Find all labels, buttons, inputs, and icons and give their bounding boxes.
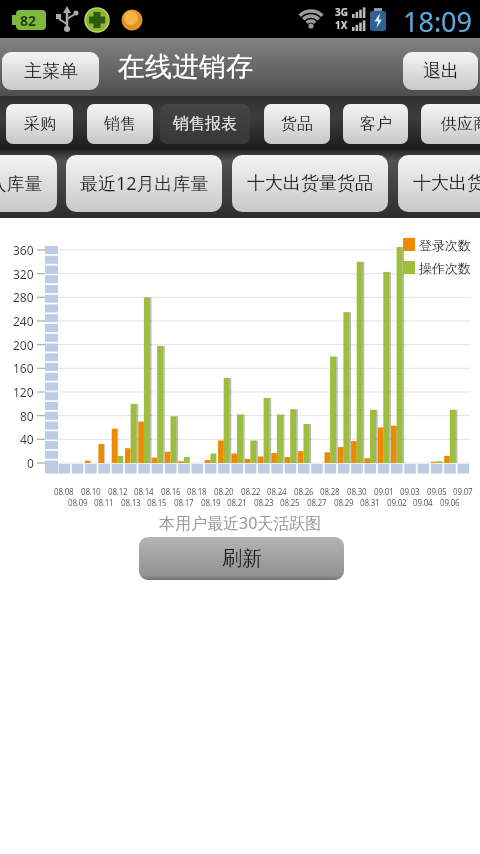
button[interactable]: 采购 (6, 104, 73, 144)
button[interactable]: 十大出货量货品 (232, 155, 388, 212)
button[interactable]: 销售 (87, 104, 153, 144)
staticText: 货品 (281, 114, 313, 134)
button[interactable]: 主菜单 (2, 52, 99, 90)
staticText: 18:09 (403, 3, 473, 40)
staticText: 08.17 (174, 497, 194, 508)
staticText: 08.08 (54, 486, 74, 497)
staticText: 08.21 (227, 497, 247, 508)
staticText: 客户 (360, 114, 392, 134)
staticText: 十大出货量客户 (413, 172, 480, 195)
staticText: 1X (335, 18, 348, 32)
staticText: 09.07 (453, 486, 473, 497)
button[interactable]: 最近12月出库量 (66, 155, 222, 212)
staticText: 09.03 (400, 486, 420, 497)
staticText: 08.28 (320, 486, 340, 497)
staticText: 09.04 (413, 497, 433, 508)
staticText: 08.09 (68, 497, 88, 508)
staticText: 08.29 (334, 497, 354, 508)
staticText: 08.20 (214, 486, 234, 497)
staticText: 3G (335, 5, 348, 19)
staticText: 十大出货量货品 (247, 172, 373, 195)
staticText: 刷新 (222, 546, 262, 571)
staticText: 本用户最近30天活跃图 (159, 512, 322, 534)
button[interactable]: 货品 (264, 104, 330, 144)
staticText: 280 (13, 289, 34, 305)
staticText: 09.02 (387, 497, 407, 508)
button[interactable]: 供应商 (421, 104, 480, 144)
staticText: 08.10 (81, 486, 101, 497)
staticText: 操作次数 (419, 260, 471, 276)
staticText: 主菜单 (24, 60, 78, 83)
staticText: 08.25 (280, 497, 300, 508)
button[interactable]: 客户 (343, 104, 408, 144)
staticText: 08.13 (121, 497, 141, 508)
staticText: 360 (13, 242, 34, 258)
staticText: 09.06 (440, 497, 460, 508)
staticText: 08.24 (267, 486, 287, 497)
staticText: 08.27 (307, 497, 327, 508)
staticText: 08.31 (360, 497, 380, 508)
staticText: 08.15 (147, 497, 167, 508)
staticText: 08.14 (134, 486, 154, 497)
button[interactable]: 最近12月入库量 (0, 155, 57, 212)
staticText: 08.11 (94, 497, 114, 508)
staticText: 120 (13, 384, 34, 400)
staticText: 40 (20, 431, 34, 447)
staticText: 08.30 (347, 486, 367, 497)
staticText: 销售报表 (173, 114, 237, 134)
staticText: 80 (20, 408, 34, 424)
staticText: 0 (27, 455, 34, 471)
staticText: 09.05 (427, 486, 447, 497)
staticText: 登录次数 (419, 237, 471, 253)
staticText: 08.16 (161, 486, 181, 497)
staticText: 退出 (423, 60, 459, 83)
staticText: 82 (20, 11, 37, 30)
button[interactable]: 十大出货量客户 (398, 155, 480, 212)
button[interactable]: 退出 (403, 52, 478, 90)
staticText: 供应商 (441, 114, 480, 134)
staticText: 08.23 (254, 497, 274, 508)
staticText: 08.12 (108, 486, 128, 497)
button[interactable]: 销售报表 (160, 104, 250, 144)
staticText: 08.19 (201, 497, 221, 508)
staticText: 160 (13, 360, 34, 376)
staticText: 200 (13, 337, 34, 353)
staticText: 采购 (24, 114, 56, 134)
staticText: 最近12月入库量 (0, 171, 43, 196)
staticText: 在线进销存 (118, 50, 253, 84)
staticText: 最近12月出库量 (80, 171, 209, 196)
staticText: 08.18 (187, 486, 207, 497)
staticText: 销售 (104, 114, 136, 134)
staticText: 08.22 (241, 486, 261, 497)
button[interactable]: 刷新 (139, 537, 344, 580)
staticText: 09.01 (374, 486, 394, 497)
staticText: 240 (13, 313, 34, 329)
staticText: 320 (13, 266, 34, 282)
staticText: 08.26 (294, 486, 314, 497)
